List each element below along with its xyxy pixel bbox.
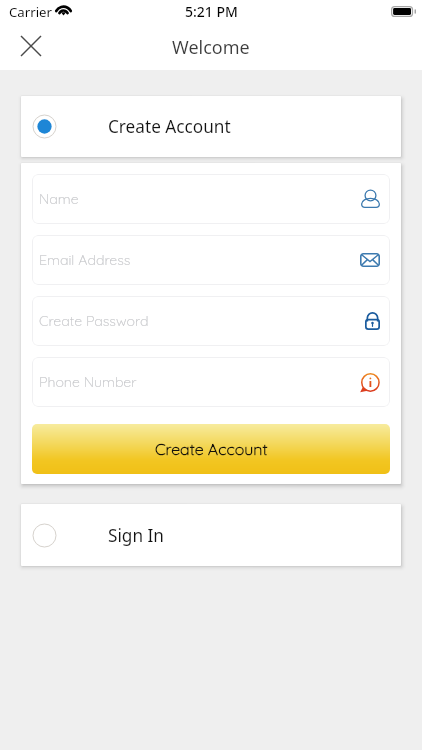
button[interactable]: Create Account	[32, 424, 390, 474]
staticText: Create Account	[155, 439, 268, 459]
button[interactable]: Phone Number	[32, 357, 390, 407]
staticText: Carrier	[9, 3, 52, 21]
staticText: 5:21 PM	[185, 2, 238, 21]
staticText: Phone Number	[39, 373, 137, 391]
staticText: Email Address	[39, 251, 131, 269]
button[interactable]: Sign In	[21, 504, 401, 566]
button[interactable]: Name	[32, 174, 390, 224]
button[interactable]: Close	[10, 26, 52, 68]
staticText: Create Password	[39, 312, 149, 330]
staticText: Welcome	[172, 35, 250, 60]
button[interactable]: Create Password	[32, 296, 390, 346]
staticText: Sign In	[108, 524, 164, 547]
staticText: Name	[39, 190, 79, 208]
button[interactable]: Email Address	[32, 235, 390, 285]
button[interactable]: Create Account	[21, 96, 401, 157]
staticText: Create Account	[108, 115, 231, 138]
